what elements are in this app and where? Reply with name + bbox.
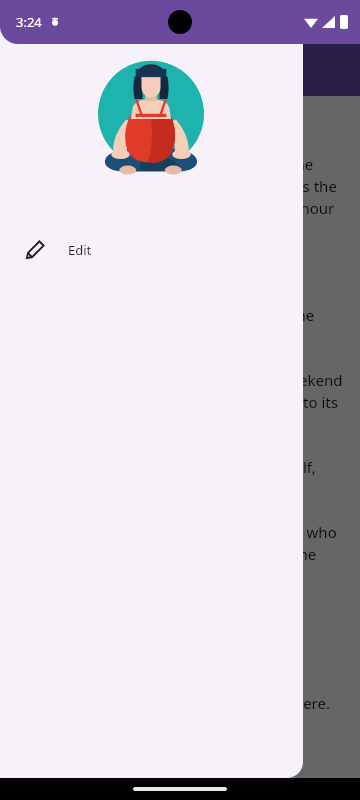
staticText: say, and perhaps the weekend is the one …	[16, 522, 344, 587]
staticText: Take a moment, you are doing just fine h…	[16, 693, 344, 736]
staticText: Edit	[68, 241, 92, 259]
staticText: 3:24	[16, 13, 42, 31]
other: Edit	[24, 239, 46, 261]
staticText: waiting, and the questions about the wee…	[16, 370, 344, 435]
staticText: always does. Step out and see for yourse…	[16, 457, 344, 500]
staticText: be no different. The shopping lists and …	[16, 305, 344, 348]
button[interactable]: Edit	[0, 230, 303, 270]
staticText: The sky is filled with heavy clouds, and…	[16, 154, 344, 241]
